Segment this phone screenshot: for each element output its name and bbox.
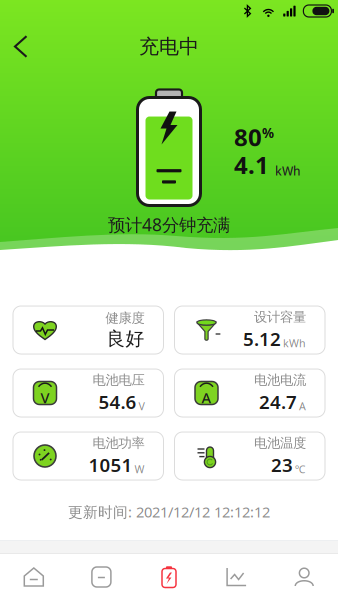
staticText: 良好 <box>106 327 144 350</box>
staticText: 1051 <box>88 452 132 477</box>
staticText: 2021/12/12 12:12:12 <box>136 502 270 521</box>
staticText: ℃ <box>295 462 306 476</box>
staticText: 54.6 <box>98 389 136 414</box>
staticText: 电池电流 <box>254 372 306 388</box>
staticText: kWh <box>275 163 301 179</box>
staticText: kWh <box>283 336 306 350</box>
staticText: 电池温度 <box>254 435 306 451</box>
staticText: 电池功率 <box>92 435 144 451</box>
staticText: A <box>299 399 306 413</box>
staticText: 预计48分钟充满 <box>108 213 230 236</box>
button[interactable]: 电池功率 <box>13 432 163 480</box>
staticText: V <box>40 388 49 407</box>
button[interactable]: Back <box>0 26 42 67</box>
staticText: 健康度 <box>105 310 144 326</box>
staticText: 5.12 <box>243 326 281 351</box>
staticText: A <box>201 388 211 407</box>
staticText: V <box>138 399 144 413</box>
button[interactable]: Vehicle <box>68 554 135 600</box>
staticText: 80 <box>234 121 262 153</box>
staticText: 充电中 <box>139 34 199 59</box>
staticText: W <box>134 462 144 476</box>
button[interactable]: 电池温度 <box>174 432 325 480</box>
staticText: 24.7 <box>259 389 297 414</box>
button[interactable]: A <box>174 369 325 417</box>
button[interactable]: Statistics <box>203 554 270 600</box>
staticText: 电池电压 <box>92 372 144 388</box>
button[interactable]: Battery <box>135 554 203 600</box>
staticText: % <box>262 124 274 142</box>
staticText: 更新时间: <box>68 502 132 521</box>
staticText: 4.1 <box>234 149 269 181</box>
button[interactable]: V <box>13 369 163 417</box>
staticText: 设计容量 <box>254 309 306 325</box>
button[interactable]: Profile <box>270 554 338 600</box>
button[interactable]: 设计容量 <box>174 306 325 354</box>
staticText: 23 <box>271 452 293 477</box>
button[interactable]: 健康度 <box>13 306 163 354</box>
button[interactable]: Home <box>0 554 68 600</box>
